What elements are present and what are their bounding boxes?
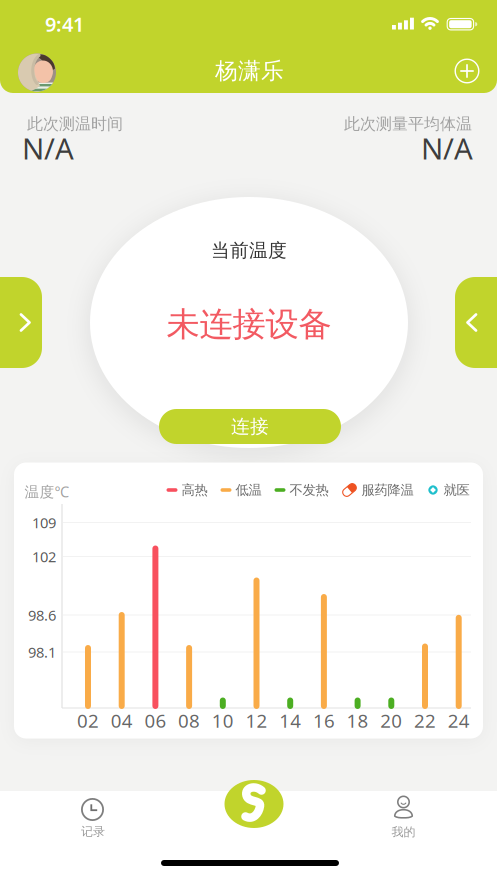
staticText: 9:41 <box>45 11 84 37</box>
staticText: 服药降温 <box>361 482 413 498</box>
staticText: 12 <box>245 708 267 733</box>
button[interactable]: Previous child <box>0 277 42 368</box>
button[interactable]: Add <box>454 58 479 83</box>
staticText: 98.6 <box>28 605 56 625</box>
staticText: 当前温度 <box>211 239 287 262</box>
staticText: 20 <box>380 708 402 733</box>
staticText: 18 <box>347 708 369 733</box>
staticText: 22 <box>414 708 436 733</box>
staticText: 就医 <box>443 482 469 498</box>
button[interactable]: Home <box>224 780 283 828</box>
staticText: 24 <box>448 708 470 733</box>
button[interactable]: Profile photo <box>18 53 56 91</box>
staticText: 04 <box>111 708 133 733</box>
staticText: 16 <box>313 708 335 733</box>
staticText: 98.1 <box>28 642 56 662</box>
staticText: 高热 <box>181 482 207 498</box>
staticText: 杨潇乐 <box>215 57 284 85</box>
staticText: 08 <box>178 708 200 733</box>
staticText: 14 <box>279 708 301 733</box>
staticText: 此次测量平均体温 <box>344 114 472 134</box>
staticText: 10 <box>212 708 234 733</box>
staticText: N/A <box>421 128 473 167</box>
button[interactable]: Connect <box>159 409 341 444</box>
staticText: 未连接设备 <box>166 304 331 345</box>
staticText: 不发热 <box>289 482 328 498</box>
staticText: 连接 <box>231 415 269 438</box>
staticText: 低温 <box>235 482 261 498</box>
staticText: 温度℃ <box>24 482 69 501</box>
staticText: 此次测温时间 <box>27 114 123 134</box>
staticText: 109 <box>32 513 56 532</box>
staticText: N/A <box>22 128 74 167</box>
staticText: 记录 <box>81 824 105 839</box>
staticText: 02 <box>77 708 99 733</box>
staticText: 102 <box>32 547 56 566</box>
staticText: 我的 <box>391 825 415 839</box>
button[interactable]: 我的 <box>368 793 438 843</box>
staticText: 06 <box>144 708 166 733</box>
button[interactable]: 记录 <box>58 793 128 843</box>
button[interactable]: Next child <box>455 277 497 368</box>
